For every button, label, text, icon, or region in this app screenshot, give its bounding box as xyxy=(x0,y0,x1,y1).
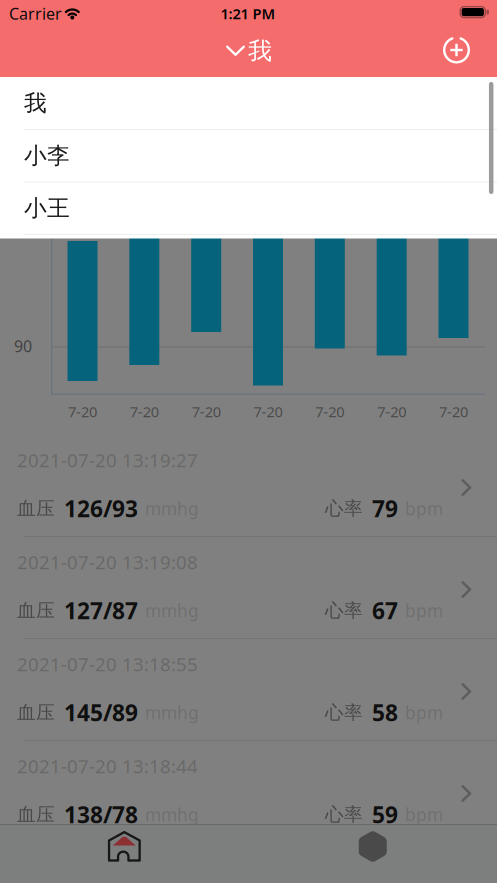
staticText: 145/89 xyxy=(64,697,138,727)
button[interactable]: 我 xyxy=(0,77,497,129)
staticText: 小李 xyxy=(24,142,70,170)
staticText: mmhg xyxy=(145,803,199,826)
button[interactable]: 小王 xyxy=(0,182,497,234)
staticText: mmhg xyxy=(145,599,199,622)
button[interactable]: 2021-07-20 13:19:08 xyxy=(0,536,497,638)
staticText: 心率 xyxy=(325,497,363,520)
staticText: 7-20 xyxy=(253,402,282,421)
staticText: mmhg xyxy=(145,701,199,724)
staticText: 1:21 PM xyxy=(220,4,275,23)
staticText: 血压 xyxy=(17,701,55,724)
staticText: 我 xyxy=(248,36,272,66)
staticText: 心率 xyxy=(325,803,363,826)
staticText: 我 xyxy=(24,89,47,117)
button[interactable]: Home xyxy=(0,824,248,868)
staticText: 58 xyxy=(372,697,398,727)
staticText: bpm xyxy=(405,599,443,622)
button[interactable]: 我 xyxy=(226,36,272,66)
staticText: bpm xyxy=(405,497,443,520)
button[interactable]: Add xyxy=(434,28,478,72)
staticText: 血压 xyxy=(17,803,55,826)
staticText: 2021-07-20 13:18:44 xyxy=(17,754,198,778)
staticText: 126/93 xyxy=(64,493,138,523)
staticText: mmhg xyxy=(145,497,199,520)
button[interactable]: 2021-07-20 13:19:27 xyxy=(0,434,497,536)
staticText: 90 xyxy=(14,335,32,357)
staticText: 59 xyxy=(372,799,398,829)
staticText: 小王 xyxy=(24,194,70,222)
staticText: 血压 xyxy=(17,599,55,622)
button[interactable]: 2021-07-20 13:18:55 xyxy=(0,638,497,740)
button[interactable]: 2021-07-20 13:18:44 xyxy=(0,740,497,842)
button[interactable]: Records xyxy=(249,824,497,868)
staticText: 2021-07-20 13:18:55 xyxy=(17,652,198,676)
staticText: 7-20 xyxy=(315,402,344,421)
staticText: 7-20 xyxy=(68,402,97,421)
staticText: 血压 xyxy=(17,497,55,520)
staticText: 127/87 xyxy=(64,595,138,625)
staticText: 心率 xyxy=(325,701,363,724)
staticText: 7-20 xyxy=(377,402,406,421)
staticText: 138/78 xyxy=(64,799,138,829)
button[interactable]: 小李 xyxy=(0,129,497,182)
staticText: bpm xyxy=(405,803,443,826)
staticText: 2021-07-20 13:19:27 xyxy=(17,448,198,472)
staticText: 心率 xyxy=(325,599,363,622)
staticText: 7-20 xyxy=(439,402,468,421)
staticText: bpm xyxy=(405,701,443,724)
staticText: Carrier xyxy=(9,3,62,24)
staticText: 2021-07-20 13:19:08 xyxy=(17,550,198,574)
staticText: 7-20 xyxy=(130,402,159,421)
staticText: 79 xyxy=(372,493,398,523)
staticText: 7-20 xyxy=(192,402,221,421)
staticText: 67 xyxy=(372,595,398,625)
